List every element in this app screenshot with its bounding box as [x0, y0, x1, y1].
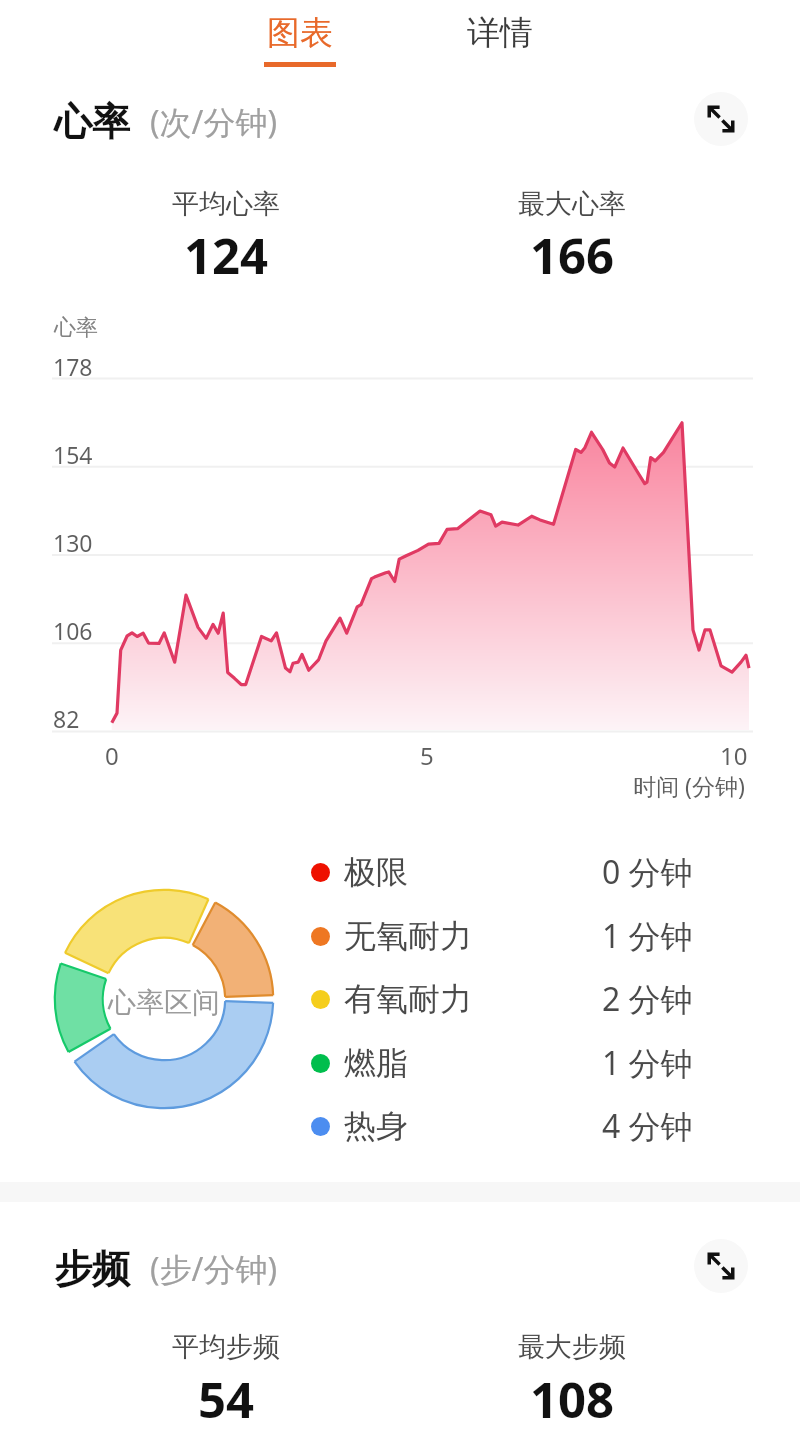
- staticText: 最大步频: [518, 1330, 626, 1364]
- staticText: 124: [184, 222, 269, 289]
- staticText: 热身: [344, 1106, 408, 1146]
- staticText: (步/分钟): [150, 1247, 278, 1291]
- button[interactable]: 燃脂: [311, 1032, 693, 1094]
- staticText: 54: [198, 1366, 255, 1433]
- staticText: 178: [53, 351, 93, 382]
- staticText: 130: [53, 527, 93, 558]
- staticText: (次/分钟): [150, 100, 278, 144]
- button[interactable]: 无氧耐力: [311, 905, 693, 967]
- staticText: 心率: [54, 98, 130, 146]
- staticText: 无氧耐力: [344, 916, 472, 956]
- staticText: 82: [53, 703, 80, 734]
- staticText: 心率区间: [108, 985, 220, 1020]
- staticText: 图表: [267, 12, 333, 54]
- staticText: 详情: [467, 12, 533, 54]
- staticText: 心率: [54, 314, 98, 342]
- staticText: 108: [530, 1366, 615, 1433]
- staticText: 106: [53, 615, 93, 646]
- staticText: 1 分钟: [602, 1041, 693, 1085]
- staticText: 最大心率: [518, 187, 626, 221]
- staticText: 154: [53, 439, 93, 470]
- button[interactable]: Expand chart: [694, 1239, 748, 1293]
- staticText: 1 分钟: [602, 914, 693, 958]
- button[interactable]: Expand chart: [694, 92, 748, 146]
- button[interactable]: 极限: [311, 841, 693, 903]
- staticText: 5: [420, 739, 434, 772]
- button[interactable]: 有氧耐力: [311, 968, 693, 1030]
- button[interactable]: 热身: [311, 1095, 693, 1157]
- staticText: 2 分钟: [602, 977, 693, 1021]
- staticText: 平均步频: [172, 1330, 280, 1364]
- staticText: 步频: [54, 1245, 130, 1293]
- button[interactable]: 详情: [400, 0, 600, 72]
- staticText: 4 分钟: [602, 1104, 693, 1148]
- staticText: 极限: [344, 852, 408, 892]
- button[interactable]: 图表: [200, 0, 400, 72]
- staticText: 时间 (分钟): [633, 770, 745, 801]
- staticText: 有氧耐力: [344, 979, 472, 1019]
- staticText: 10: [720, 739, 748, 772]
- staticText: 0: [105, 739, 119, 772]
- staticText: 燃脂: [344, 1043, 408, 1083]
- staticText: 平均心率: [172, 187, 280, 221]
- staticText: 0 分钟: [602, 850, 693, 894]
- staticText: 166: [530, 222, 615, 289]
